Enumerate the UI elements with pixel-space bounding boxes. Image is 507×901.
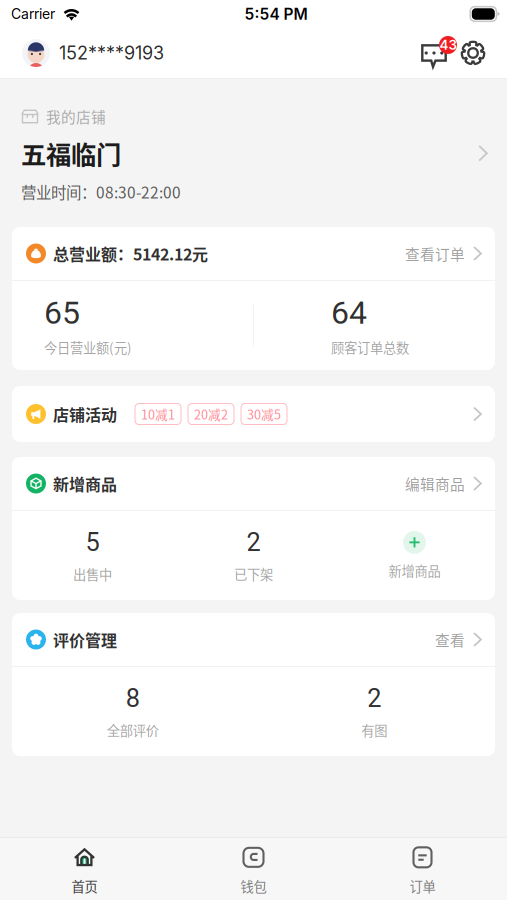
staticText: 评价管理 [53, 628, 117, 651]
staticText: 我的店铺 [46, 106, 106, 127]
staticText: 10减1 [141, 405, 175, 423]
staticText: 20减2 [194, 405, 228, 423]
button[interactable]: 总营业额：5142.12元 [12, 227, 495, 280]
button[interactable]: 新增商品 [12, 457, 495, 510]
staticText: 新增商品 [388, 561, 440, 580]
button[interactable]: 首页 [0, 834, 169, 901]
staticText: 订单 [409, 876, 435, 896]
staticText: 全部评价 [107, 720, 159, 739]
button[interactable]: 评价管理 [12, 613, 495, 666]
staticText: 5:54 PM [245, 5, 308, 23]
staticText: 顾客订单总数 [331, 338, 409, 357]
staticText: 30减5 [247, 405, 281, 423]
staticText: 8 [126, 683, 140, 713]
staticText: 有图 [361, 720, 387, 739]
staticText: 5 [85, 527, 99, 557]
staticText: 64 [331, 294, 367, 332]
staticText: 总营业额：5142.12元 [53, 242, 208, 265]
staticText: 已下架 [234, 564, 273, 583]
button[interactable]: 我的店铺 [0, 79, 507, 227]
staticText: 152****9193 [59, 42, 164, 64]
staticText: 新增商品 [53, 472, 117, 495]
staticText: 2 [367, 683, 381, 713]
button[interactable]: 152****9193 [22, 39, 164, 67]
button[interactable]: 订单 [338, 834, 507, 901]
staticText: 65 [44, 294, 80, 332]
staticText: 钱包 [240, 876, 266, 896]
staticText: 营业时间：08:30-22:00 [21, 181, 181, 203]
button[interactable]: Settings [457, 40, 486, 66]
staticText: 店铺活动 [53, 402, 117, 426]
staticText: 2 [246, 527, 260, 557]
staticText: 首页 [71, 876, 97, 896]
staticText: 五福临门 [21, 135, 121, 172]
button[interactable]: 新增商品 [334, 531, 495, 580]
staticText: 编辑商品 [405, 473, 465, 494]
staticText: 查看订单 [405, 243, 465, 264]
button[interactable]: 钱包 [169, 834, 338, 901]
button[interactable]: 店铺活动 [0, 370, 507, 442]
staticText: 查看 [435, 629, 465, 650]
staticText: Carrier [11, 5, 55, 22]
button[interactable]: Messages [421, 37, 457, 69]
staticText: 今日营业额(元) [44, 338, 132, 357]
staticText: 43 [439, 37, 456, 53]
staticText: 出售中 [73, 564, 112, 583]
